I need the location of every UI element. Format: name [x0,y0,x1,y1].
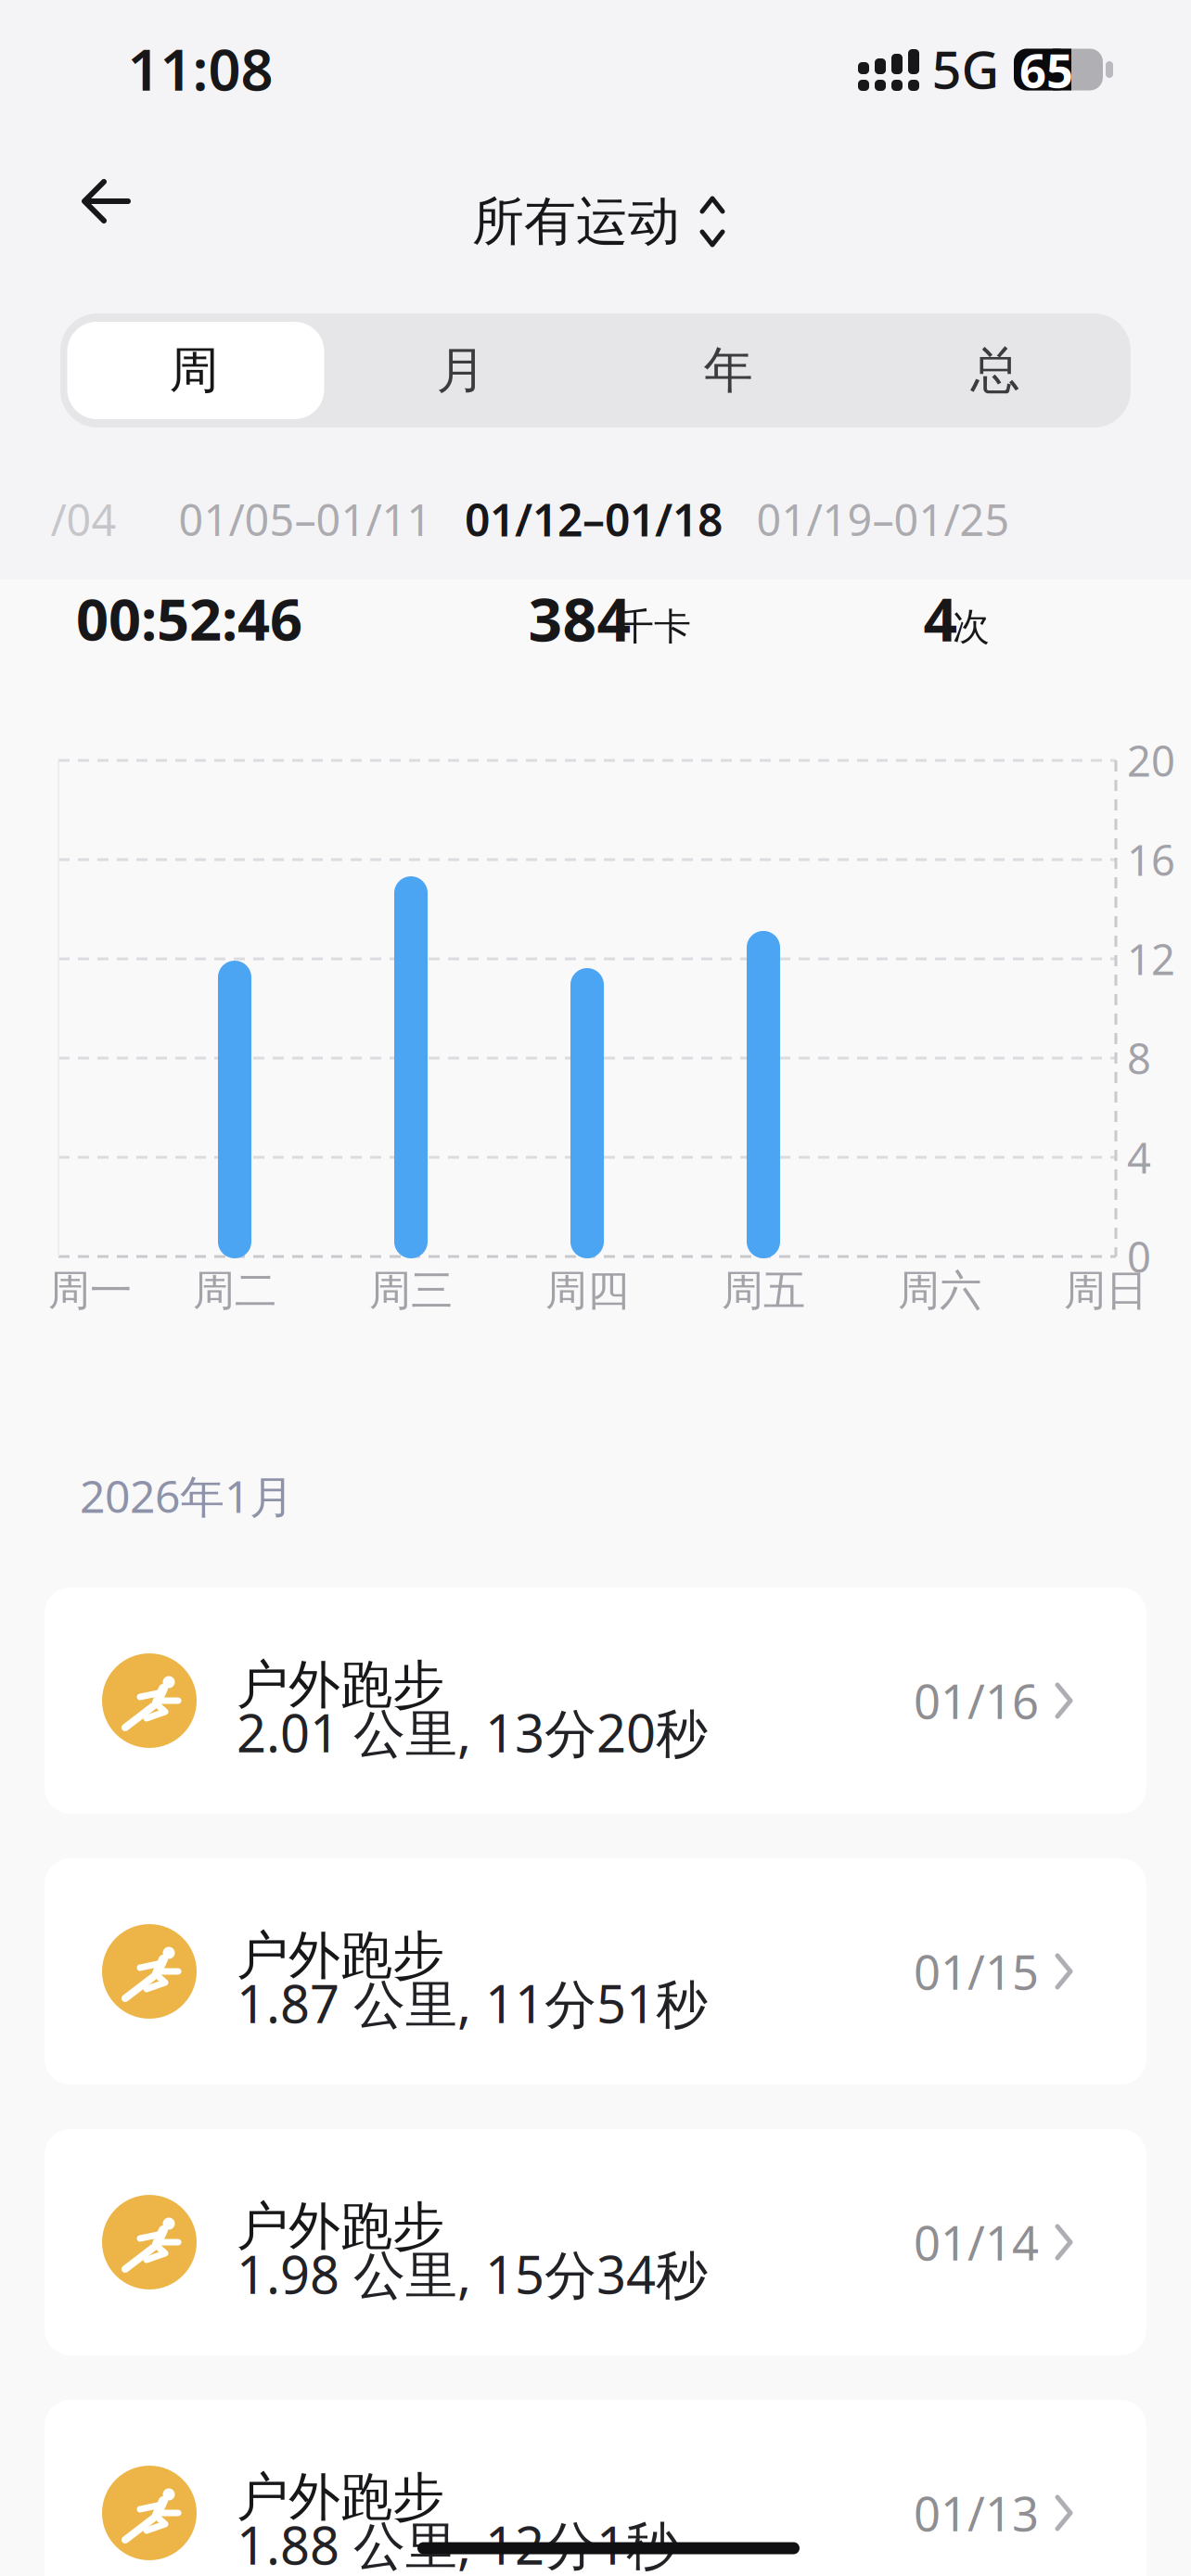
button[interactable]: 周 [65,313,322,427]
staticText: 千卡 [617,604,691,650]
button[interactable]: Back [0,0,1191,2576]
staticText: 2026年1月 [80,1466,294,1525]
staticText: 01/05–01/11 [179,491,432,548]
staticText: 12 [1127,931,1175,987]
staticText: 所有运动 [472,190,680,254]
staticText: 384 [528,579,631,658]
button[interactable]: 所有运动 [0,0,1191,2576]
staticText: 总 [971,340,1020,401]
staticText: 户外跑步 [237,1653,444,1717]
staticText: 次 [953,604,990,650]
button[interactable]: 户外跑步 [45,2129,1146,2355]
button[interactable]: 总 [867,313,1124,427]
staticText: 户外跑步 [237,2195,444,2258]
staticText: 1.98 公里, 15分34秒 [237,2239,708,2308]
staticText: 1.88 公里, 12分1秒 [237,2510,678,2576]
staticText: 周日 [1064,1265,1147,1317]
button[interactable]: 01/19–01/25 [741,482,1025,556]
staticText: 65 [1019,38,1073,101]
button[interactable]: /04 [23,482,144,556]
staticText: 年 [704,340,753,401]
staticText: 月 [436,340,486,401]
staticText: 1.87 公里, 11分51秒 [237,1968,708,2037]
staticText: 20 [1127,732,1175,788]
staticText: 4 [1127,1129,1151,1185]
staticText: 户外跑步 [237,1924,444,1988]
button[interactable]: 01/12–01/18 [452,482,736,556]
staticText: 周一 [48,1265,132,1317]
button[interactable]: 户外跑步 [45,1858,1146,2085]
staticText: 周三 [369,1265,453,1317]
staticText: 周二 [193,1265,276,1317]
staticText: 2.01 公里, 13分20秒 [237,1698,708,1767]
staticText: 01/14 [914,2211,1039,2273]
staticText: 周 [169,340,218,401]
staticText: 周五 [722,1265,805,1317]
staticText: 01/12–01/18 [465,490,723,549]
button[interactable]: 户外跑步 [45,1588,1146,1814]
button[interactable]: 户外跑步 [45,2400,1146,2576]
button[interactable]: 月 [333,313,589,427]
staticText: 户外跑步 [237,2465,444,2529]
staticText: 01/15 [914,1940,1039,2003]
staticText: /04 [51,491,116,548]
staticText: 8 [1127,1030,1151,1086]
staticText: 5G [932,34,999,103]
staticText: 11:08 [128,31,273,106]
staticText: 00:52:46 [76,581,302,656]
staticText: 0 [1127,1229,1151,1284]
staticText: 16 [1127,832,1175,888]
button[interactable]: 年 [600,313,857,427]
staticText: 01/19–01/25 [756,491,1010,548]
staticText: 4 [923,579,958,658]
button[interactable]: 01/05–01/11 [163,482,447,556]
staticText: 01/16 [914,1669,1039,1732]
staticText: 周六 [898,1265,981,1317]
staticText: 周四 [545,1265,629,1317]
staticText: 01/13 [914,2482,1039,2544]
